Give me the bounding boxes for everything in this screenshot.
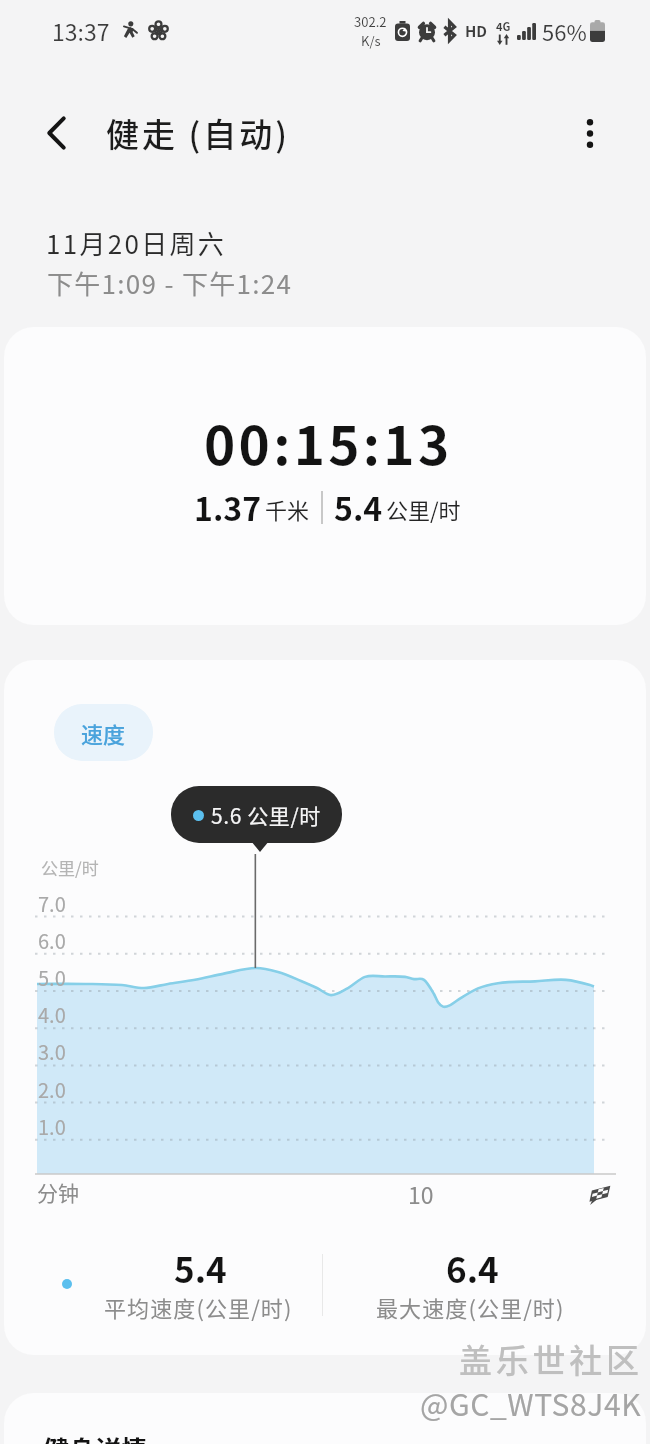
staticText: 5.4 [334,484,383,530]
staticText: 5.0 [38,963,66,992]
staticText: 速度 [81,717,126,749]
staticText: 6.0 [38,926,66,955]
staticText: 10 [408,1177,434,1210]
staticText: @GC_WTS8J4K [420,1381,642,1424]
staticText: HD [465,20,488,42]
staticText: 公里/时 [41,855,99,880]
staticText: 7.0 [38,889,66,918]
staticText: 4G [496,18,511,34]
staticText: 公里/时 [386,493,461,525]
staticText: 健身详情 [43,1430,148,1444]
staticText: 00:15:13 [204,404,453,481]
staticText: K/s [361,31,381,50]
staticText: 1.0 [38,1112,66,1141]
staticText: 6.4 [446,1242,499,1293]
button[interactable]: More options [552,95,628,171]
staticText: 健走 (自动) [106,109,290,157]
staticText: 302.2 [354,12,387,31]
staticText: 1.37 [194,484,262,530]
staticText: 最大速度(公里/时) [376,1291,565,1323]
staticText: 盖乐世社区 [457,1335,641,1383]
button[interactable]: Back [18,92,94,174]
staticText: 千米 [265,493,310,525]
staticText: 5.4 [174,1242,227,1293]
staticText: 4.0 [38,1000,66,1029]
staticText: 3.0 [38,1037,66,1066]
staticText: 平均速度(公里/时) [104,1291,293,1323]
staticText: 2.0 [38,1075,66,1104]
staticText: 下午1:09 - 下午1:24 [47,264,293,302]
staticText: 分钟 [37,1177,79,1207]
staticText: 11月20日周六 [46,224,227,262]
button[interactable]: 速度 [54,704,153,761]
staticText: 13:37 [52,14,110,47]
staticText: 56% [542,15,587,47]
staticText: 5.6 公里/时 [211,800,321,830]
